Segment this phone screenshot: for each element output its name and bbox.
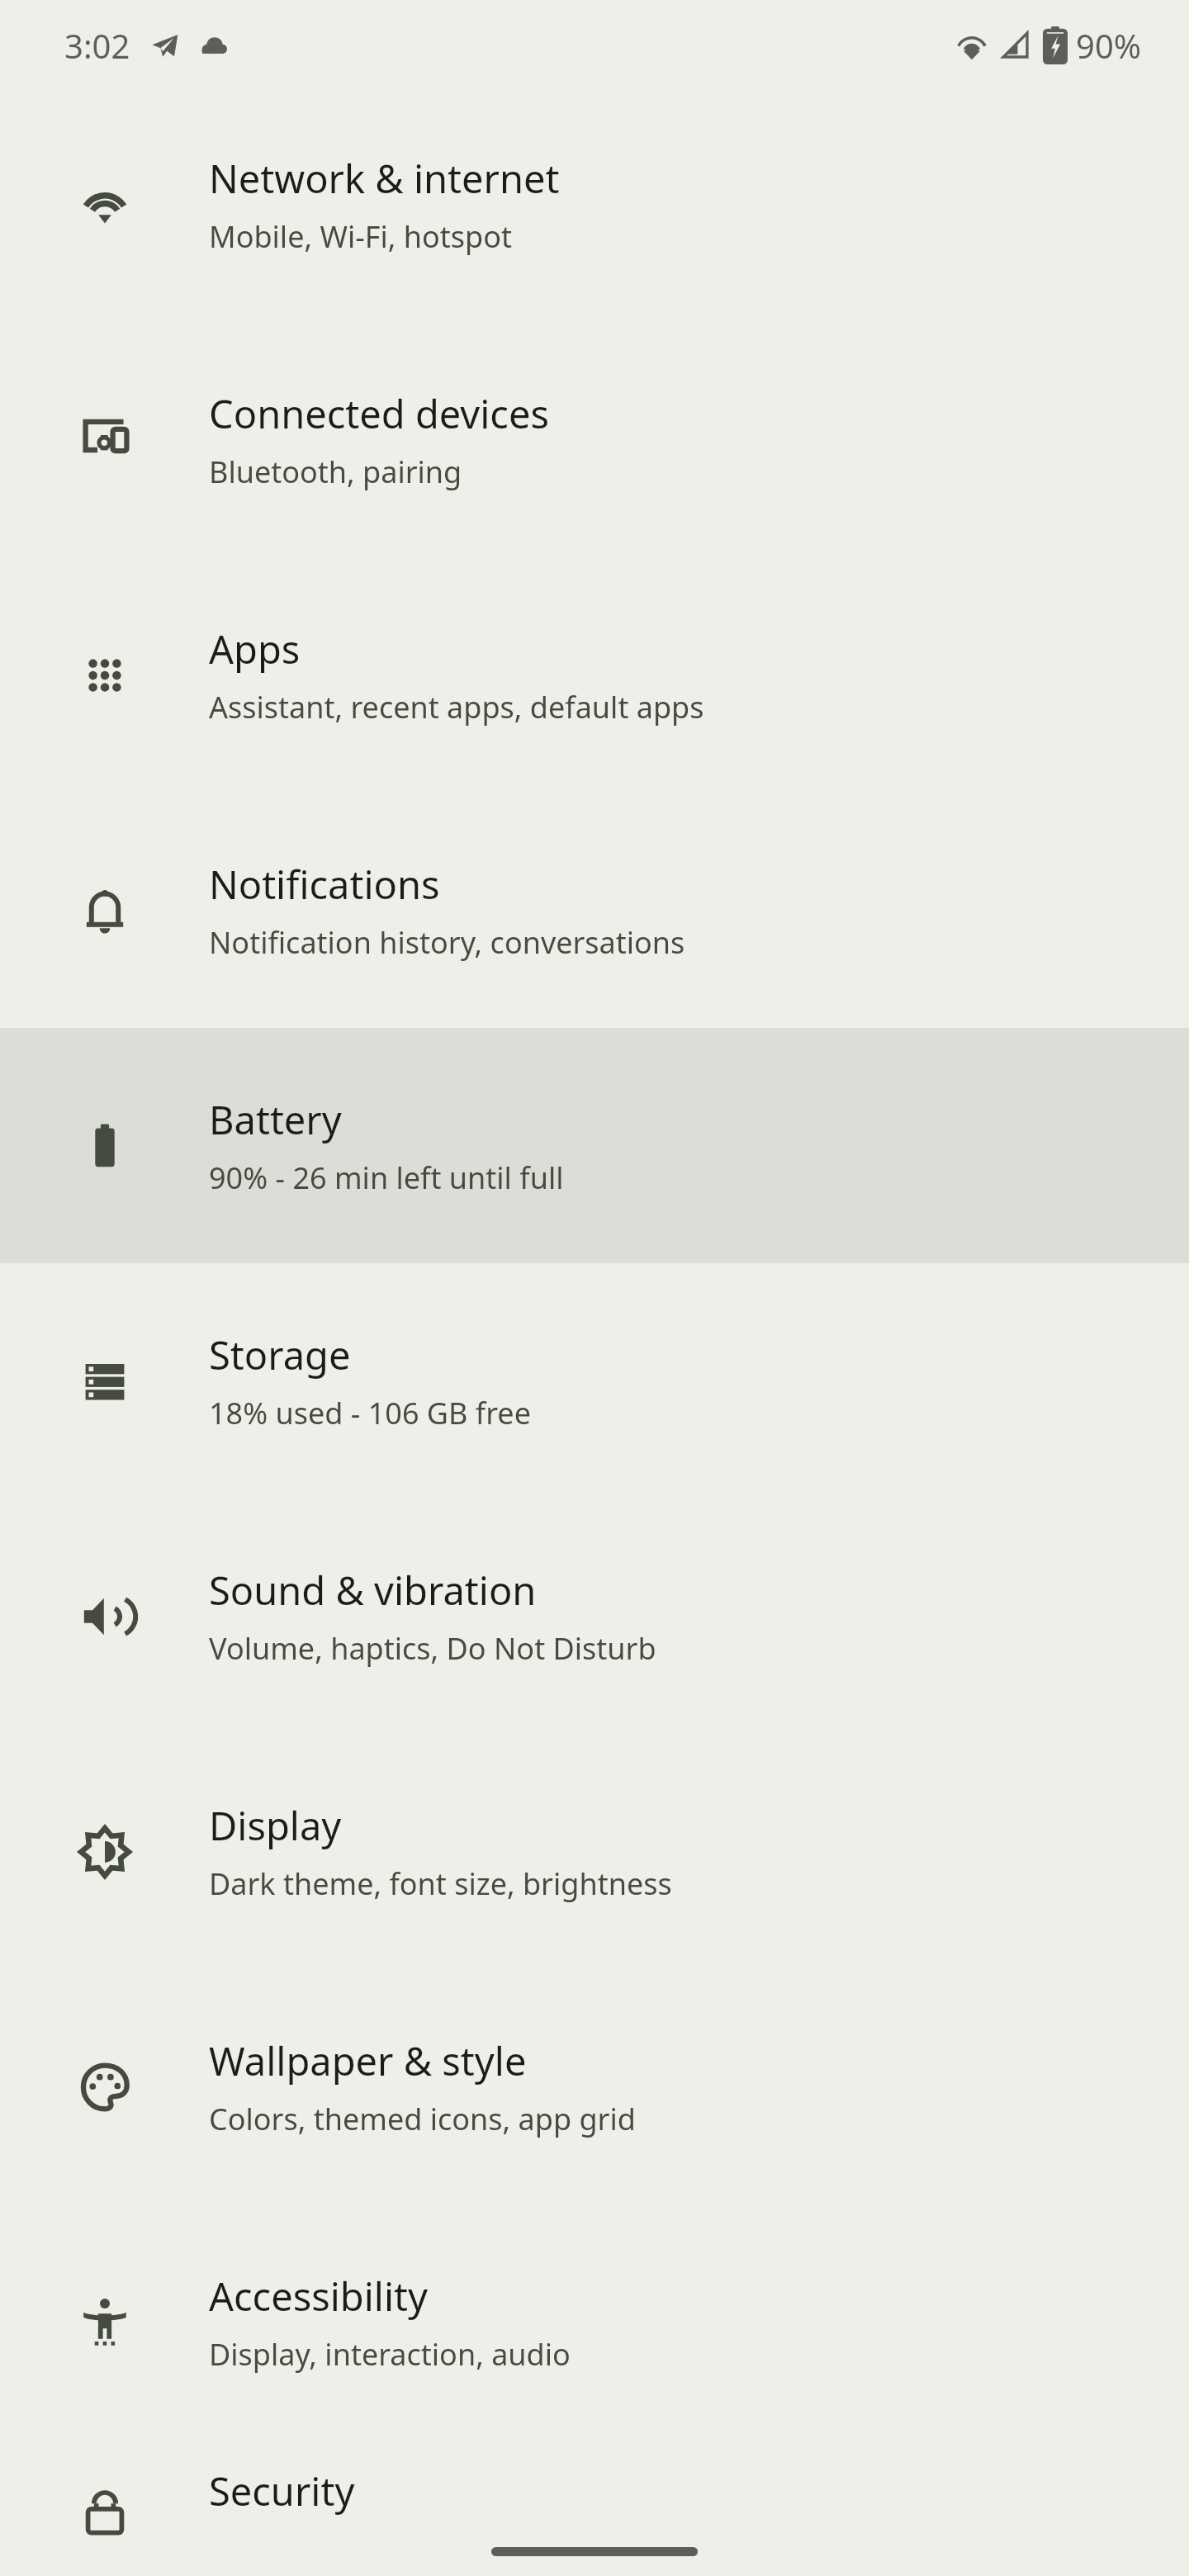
staticText: Accessibility bbox=[209, 2270, 429, 2323]
button[interactable]: Sound & vibration bbox=[0, 1499, 1189, 1734]
staticText: Notification history, conversations bbox=[209, 922, 685, 963]
staticText: Security bbox=[209, 2465, 355, 2517]
staticText: Apps bbox=[209, 623, 301, 675]
staticText: 90% bbox=[1076, 23, 1141, 68]
button[interactable]: Display bbox=[0, 1734, 1189, 1969]
staticText: 18% used - 106 GB free bbox=[209, 1393, 531, 1433]
staticText: Assistant, recent apps, default apps bbox=[209, 687, 704, 727]
staticText: 90% - 26 min left until full bbox=[209, 1158, 564, 1198]
staticText: Display, interaction, audio bbox=[209, 2334, 571, 2375]
button[interactable]: Wallpaper & style bbox=[0, 1969, 1189, 2204]
staticText: Mobile, Wi-Fi, hotspot bbox=[209, 216, 512, 257]
staticText: Wallpaper & style bbox=[209, 2034, 527, 2087]
staticText: Dark theme, font size, brightness bbox=[209, 1863, 672, 1904]
staticText: Colors, themed icons, app grid bbox=[209, 2099, 636, 2139]
staticText: Connected devices bbox=[209, 387, 549, 440]
button[interactable]: Notifications bbox=[0, 793, 1189, 1028]
button[interactable]: Storage bbox=[0, 1263, 1189, 1499]
button[interactable]: Security bbox=[0, 2440, 1189, 2576]
button[interactable]: Apps bbox=[0, 557, 1189, 793]
staticText: 3:02 bbox=[64, 23, 130, 68]
staticText: Network & internet bbox=[209, 152, 560, 205]
staticText: Bluetooth, pairing bbox=[209, 452, 462, 492]
button[interactable]: Network & internet bbox=[0, 87, 1189, 322]
staticText: Storage bbox=[209, 1328, 351, 1381]
button[interactable]: Connected devices bbox=[0, 322, 1189, 557]
staticText: Volume, haptics, Do Not Disturb bbox=[209, 1628, 656, 1669]
button[interactable]: Battery bbox=[0, 1028, 1189, 1263]
button[interactable]: Accessibility bbox=[0, 2204, 1189, 2440]
staticText: Display bbox=[209, 1799, 342, 1852]
staticText: Notifications bbox=[209, 858, 440, 911]
staticText: Battery bbox=[209, 1093, 342, 1146]
staticText: Sound & vibration bbox=[209, 1564, 537, 1617]
